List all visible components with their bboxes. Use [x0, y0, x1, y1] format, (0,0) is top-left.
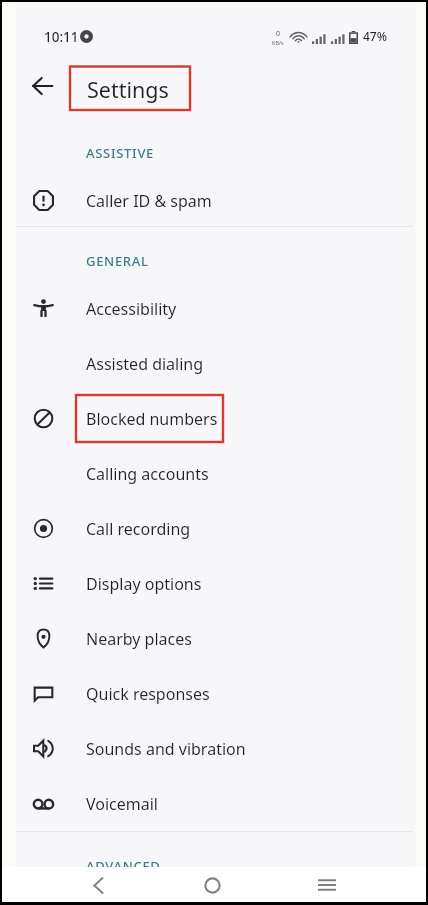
- staticText: Settings: [87, 75, 169, 104]
- button[interactable]: Settings: [70, 67, 190, 111]
- button[interactable]: Nearby places: [3, 611, 427, 666]
- staticText: Assisted dialing: [86, 353, 204, 375]
- staticText: Accessibility: [86, 298, 177, 320]
- staticText: 10:11: [44, 28, 79, 44]
- staticText: Sounds and vibration: [86, 738, 246, 760]
- button[interactable]: Blocked numbers: [3, 391, 427, 446]
- staticText: Nearby places: [86, 628, 192, 650]
- button[interactable]: Display options: [3, 556, 427, 611]
- staticText: 0: [276, 29, 281, 39]
- button[interactable]: Assisted dialing: [3, 336, 427, 391]
- button[interactable]: Accessibility: [3, 281, 427, 336]
- staticText: Caller ID & spam: [86, 190, 212, 212]
- button[interactable]: Calling accounts: [3, 446, 427, 501]
- button[interactable]: Caller ID & spam: [3, 173, 427, 228]
- button[interactable]: Recent apps: [304, 868, 349, 902]
- button[interactable]: Navigate up: [22, 66, 62, 106]
- button[interactable]: Home: [190, 868, 235, 902]
- staticText: GENERAL: [86, 252, 149, 270]
- staticText: Blocked numbers: [86, 408, 218, 430]
- staticText: Call recording: [86, 518, 191, 540]
- staticText: Display options: [86, 573, 202, 595]
- button[interactable]: Quick responses: [3, 666, 427, 721]
- staticText: Quick responses: [86, 683, 210, 705]
- button[interactable]: Call recording: [3, 501, 427, 556]
- staticText: KB/s: [272, 39, 284, 46]
- staticText: ASSISTIVE: [86, 144, 155, 162]
- staticText: 47%: [363, 28, 387, 44]
- staticText: ADVANCED: [86, 857, 161, 875]
- button[interactable]: Back: [75, 868, 120, 902]
- button[interactable]: Voicemail: [3, 776, 427, 831]
- staticText: Voicemail: [86, 793, 158, 815]
- staticText: Calling accounts: [86, 463, 209, 485]
- button[interactable]: Sounds and vibration: [3, 721, 427, 776]
